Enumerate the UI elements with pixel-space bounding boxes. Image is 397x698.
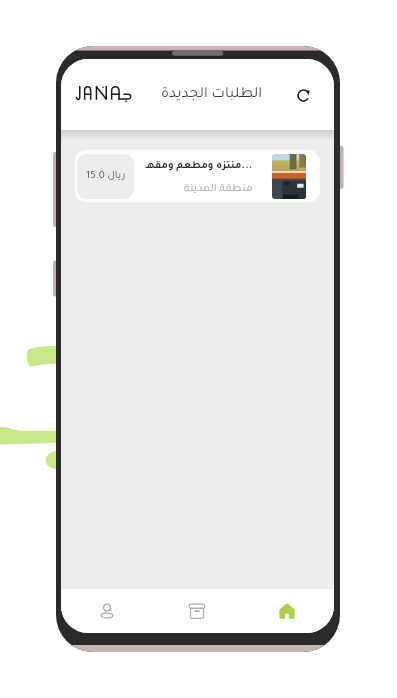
button[interactable]: Refresh [290,82,316,108]
staticText: 15.0 ريال [86,171,126,182]
button[interactable]: 15.0 ريال [75,150,320,202]
button[interactable]: Profile [61,589,152,633]
staticText: منتزه ومطعم ومقهـ... [146,161,253,172]
staticText: منطقة المدينة [184,184,253,196]
staticText: الطلبات الجديدة [161,87,263,103]
button[interactable]: Home [242,589,332,633]
button[interactable]: Orders [152,589,242,633]
